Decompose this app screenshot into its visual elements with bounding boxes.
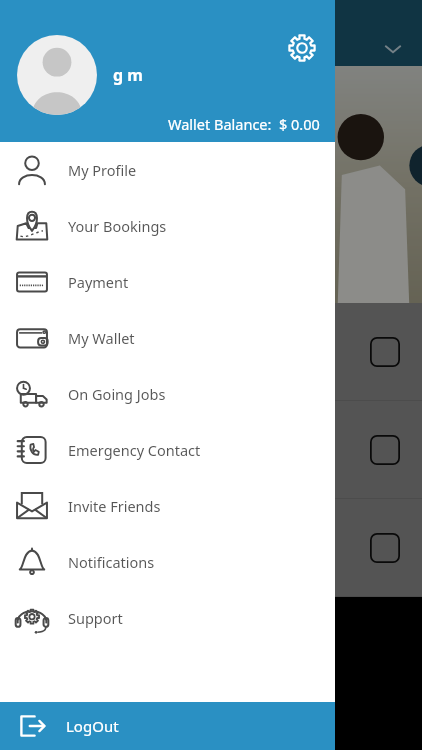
staticText: Notifications: [68, 552, 155, 572]
button[interactable]: Profile photo: [17, 35, 97, 115]
button[interactable]: Emergency Contact: [0, 422, 335, 478]
button[interactable]: My Wallet: [0, 310, 335, 366]
staticText: My Profile: [68, 160, 137, 180]
button[interactable]: On Going Jobs: [0, 366, 335, 422]
staticText: Wallet Balance: $ 0.00: [168, 114, 320, 134]
staticText: Your Bookings: [68, 216, 167, 236]
button[interactable]: Support: [0, 590, 335, 646]
staticText: Emergency Contact: [68, 440, 201, 460]
button[interactable]: Your Bookings: [0, 198, 335, 254]
staticText: On Going Jobs: [68, 384, 166, 404]
button[interactable]: Notifications: [0, 534, 335, 590]
button[interactable]: Invite Friends: [0, 478, 335, 534]
staticText: g m: [113, 64, 143, 86]
button[interactable]: LogOut: [0, 702, 335, 750]
button[interactable]: My Profile: [0, 142, 335, 198]
staticText: Payment: [68, 272, 129, 292]
button[interactable]: Settings: [283, 29, 321, 67]
button[interactable]: Payment: [0, 254, 335, 310]
staticText: Support: [68, 608, 123, 628]
staticText: Invite Friends: [68, 496, 161, 516]
staticText: My Wallet: [68, 328, 135, 348]
staticText: LogOut: [66, 716, 119, 736]
